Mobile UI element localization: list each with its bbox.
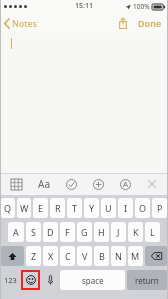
staticText: B bbox=[99, 250, 105, 262]
button[interactable]: L bbox=[145, 222, 160, 242]
button[interactable]: U bbox=[101, 198, 116, 218]
staticText: 123 bbox=[4, 275, 17, 285]
button[interactable]: P bbox=[152, 198, 167, 218]
staticText: return bbox=[135, 275, 159, 286]
button[interactable]: X bbox=[43, 246, 58, 266]
button[interactable]: Done bbox=[135, 15, 165, 31]
staticText: X bbox=[48, 250, 54, 262]
staticText: A bbox=[13, 226, 19, 238]
staticText: N bbox=[115, 250, 122, 262]
staticText: Z bbox=[31, 250, 37, 262]
button[interactable]: B bbox=[94, 246, 109, 266]
button[interactable]: K bbox=[128, 222, 143, 242]
staticText: 100% bbox=[133, 2, 150, 11]
button[interactable]: D bbox=[43, 222, 58, 242]
staticText: Y bbox=[89, 202, 95, 214]
staticText: L bbox=[150, 226, 155, 238]
button[interactable]: R bbox=[50, 198, 65, 218]
button[interactable]: V bbox=[77, 246, 92, 266]
button[interactable]: F bbox=[60, 222, 75, 242]
staticText: Notes bbox=[12, 17, 37, 29]
staticText: S bbox=[31, 226, 36, 238]
staticText: G bbox=[81, 226, 88, 238]
button[interactable]: J bbox=[111, 222, 126, 242]
staticText: D bbox=[47, 226, 54, 238]
button[interactable]: I bbox=[118, 198, 133, 218]
staticText: Q bbox=[4, 202, 12, 214]
staticText: 15:11 bbox=[75, 1, 93, 11]
staticText: E bbox=[38, 202, 44, 214]
staticText: U bbox=[105, 202, 112, 214]
button[interactable]: space bbox=[60, 270, 125, 290]
staticText: M bbox=[131, 250, 140, 262]
staticText: K bbox=[133, 226, 139, 238]
button[interactable]: H bbox=[94, 222, 109, 242]
staticText: J bbox=[117, 226, 120, 238]
button[interactable]: E bbox=[33, 198, 48, 218]
button[interactable]: Shift bbox=[1, 246, 24, 266]
button[interactable]: O bbox=[135, 198, 150, 218]
button[interactable]: Camera bbox=[90, 176, 107, 193]
staticText: space bbox=[82, 275, 104, 286]
staticText: Aa bbox=[38, 177, 50, 191]
button[interactable]: return bbox=[127, 270, 167, 290]
button[interactable]: 123 bbox=[1, 270, 19, 290]
button[interactable]: W bbox=[17, 198, 31, 218]
button[interactable]: T bbox=[67, 198, 82, 218]
button[interactable]: Draw bbox=[117, 176, 134, 193]
button[interactable]: Y bbox=[84, 198, 99, 218]
button[interactable]: Q bbox=[1, 198, 15, 218]
button[interactable]: Emoji bbox=[21, 270, 40, 290]
button[interactable]: Checklist bbox=[63, 176, 80, 193]
button[interactable]: Share bbox=[115, 15, 131, 31]
staticText: H bbox=[98, 226, 105, 238]
button[interactable]: Table bbox=[8, 176, 25, 193]
button[interactable]: Notes bbox=[0, 14, 43, 32]
button[interactable]: Dictate bbox=[42, 270, 58, 290]
staticText: O bbox=[139, 202, 147, 214]
button[interactable]: G bbox=[77, 222, 92, 242]
button[interactable]: Backspace bbox=[145, 246, 167, 266]
staticText: V bbox=[82, 250, 88, 262]
staticText: T bbox=[72, 202, 78, 214]
staticText: W bbox=[20, 202, 29, 214]
staticText: C bbox=[65, 250, 71, 262]
button[interactable]: A bbox=[8, 222, 24, 242]
button[interactable]: Close keyboard bbox=[144, 176, 160, 192]
staticText: F bbox=[65, 226, 70, 238]
staticText: P bbox=[157, 202, 163, 214]
button[interactable]: Z bbox=[26, 246, 41, 266]
staticText: R bbox=[55, 202, 61, 214]
staticText: I bbox=[124, 202, 128, 214]
button[interactable]: S bbox=[26, 222, 41, 242]
button[interactable]: M bbox=[128, 246, 143, 266]
staticText: Done bbox=[138, 17, 162, 29]
button[interactable]: C bbox=[60, 246, 75, 266]
button[interactable]: N bbox=[111, 246, 126, 266]
button[interactable]: Aa bbox=[35, 174, 53, 194]
